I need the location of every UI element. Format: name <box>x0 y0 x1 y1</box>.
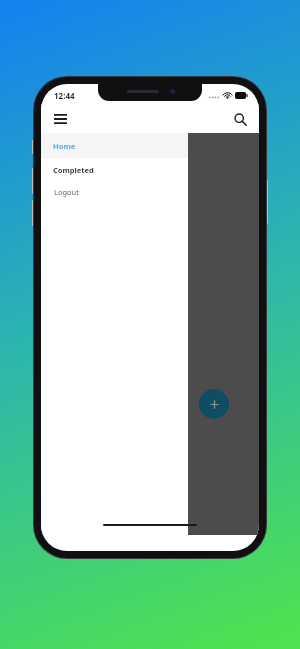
button[interactable]: Home <box>41 133 188 158</box>
staticText: 12:44 <box>54 90 75 101</box>
staticText: Home <box>53 141 76 151</box>
button[interactable]: Search <box>228 107 252 131</box>
button[interactable]: Completed <box>41 158 188 181</box>
staticText: Completed <box>53 165 94 175</box>
button[interactable]: Open navigation drawer <box>48 107 72 131</box>
button[interactable]: Add task <box>199 389 229 419</box>
button[interactable]: Logout <box>41 181 188 203</box>
staticText: Logout <box>54 187 79 197</box>
